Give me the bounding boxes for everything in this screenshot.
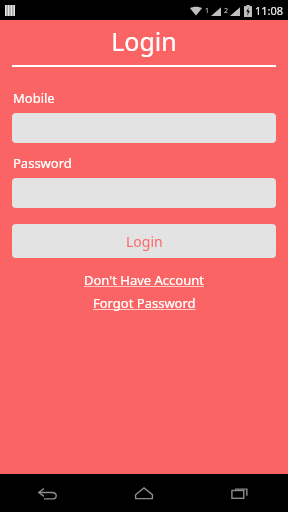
button[interactable]: Recent apps	[192, 474, 288, 512]
button[interactable]: Home	[96, 474, 192, 512]
button[interactable]: Don't Have Account	[0, 271, 288, 289]
staticText: Login	[126, 232, 163, 251]
staticText: 2	[224, 6, 229, 16]
button[interactable]	[12, 113, 276, 143]
button[interactable]	[12, 178, 276, 208]
staticText: 1	[205, 6, 210, 16]
staticText: Password	[13, 154, 72, 172]
staticText: Forgot Password	[93, 294, 196, 312]
staticText: Login	[0, 24, 288, 58]
staticText: 11:08	[255, 3, 284, 18]
button[interactable]: Back	[0, 474, 96, 512]
button[interactable]: Forgot Password	[0, 294, 288, 312]
staticText: Don't Have Account	[84, 271, 204, 289]
staticText: Mobile	[13, 89, 55, 107]
button[interactable]: Login	[12, 224, 276, 258]
